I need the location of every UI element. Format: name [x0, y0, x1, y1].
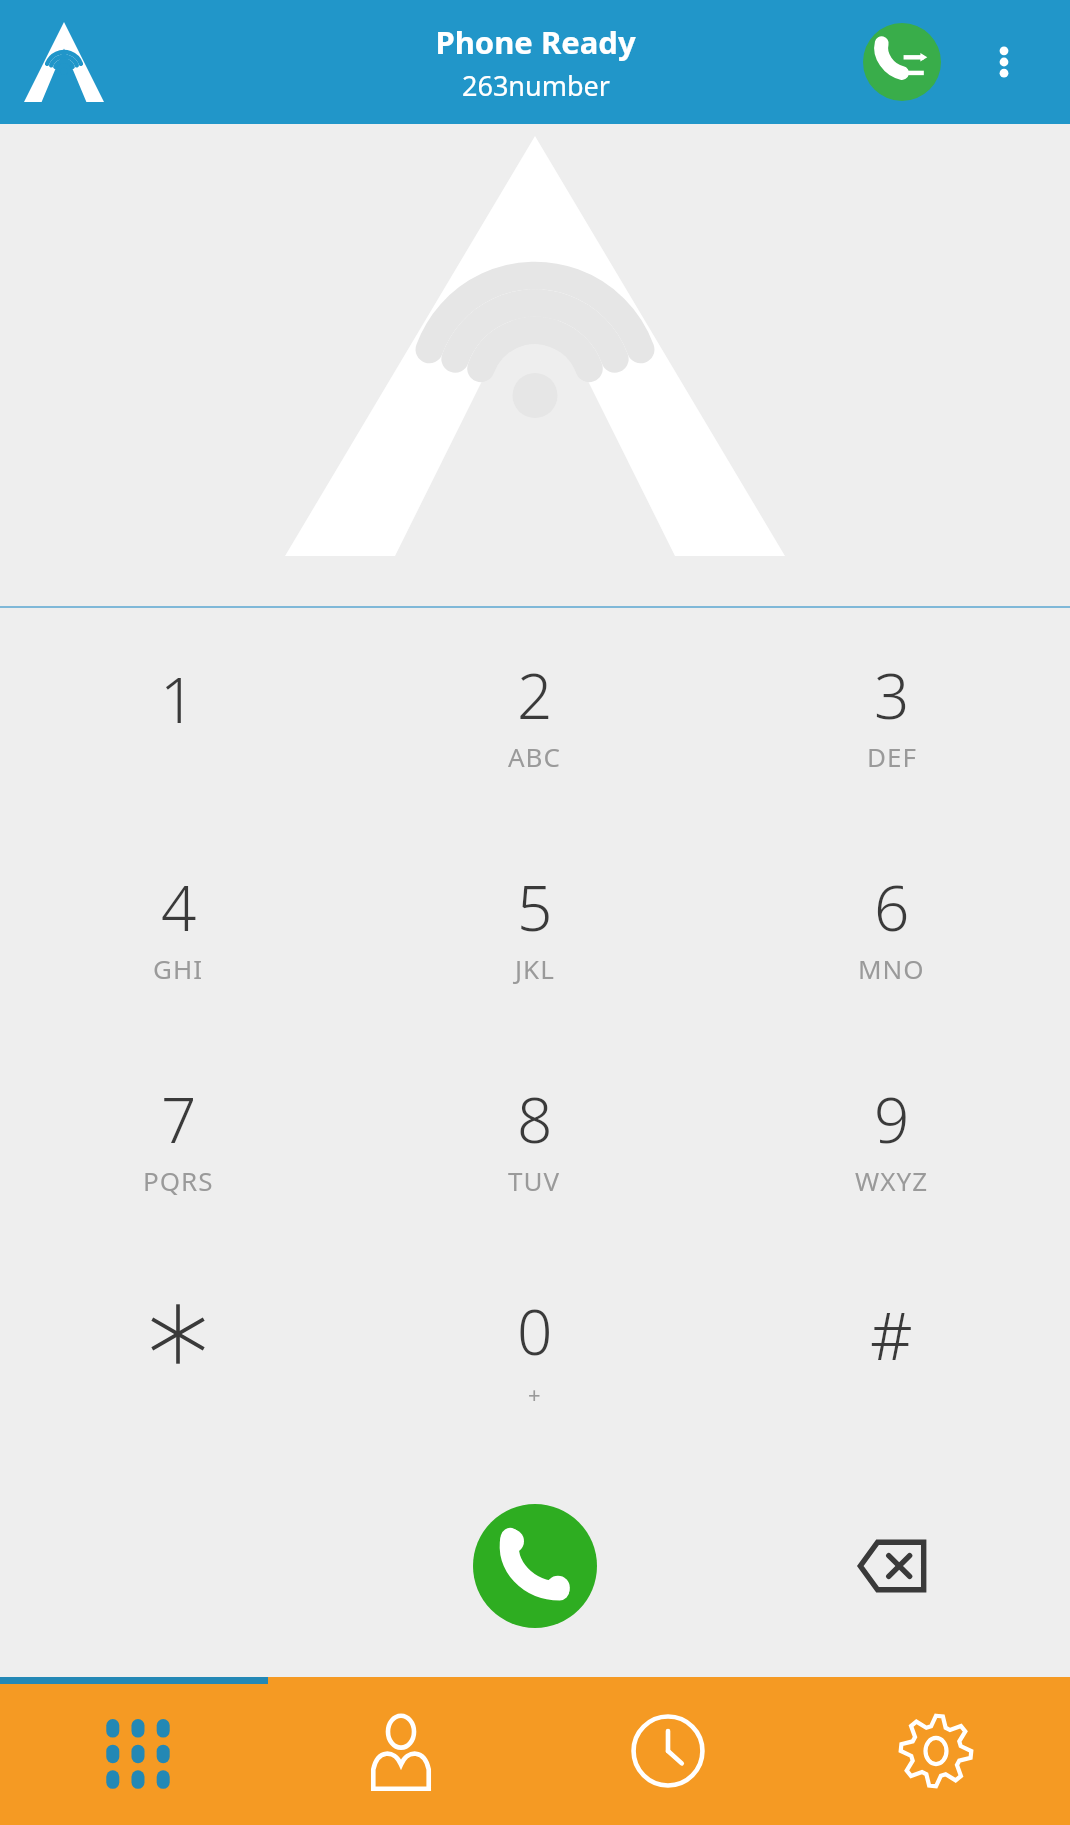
button[interactable]: 8 [356, 1031, 713, 1243]
button[interactable]: Call [356, 1455, 713, 1677]
staticText: 9 [874, 1077, 910, 1161]
staticText: 3 [874, 653, 910, 737]
button[interactable]: Recents [534, 1677, 802, 1825]
button[interactable]: 0 [356, 1243, 713, 1455]
button[interactable]: # [713, 1243, 1070, 1455]
button[interactable] [0, 1243, 356, 1455]
button[interactable]: 6 [713, 819, 1070, 1031]
button[interactable]: Call transfer [860, 20, 944, 104]
button[interactable]: 5 [356, 819, 713, 1031]
button[interactable]: 7 [0, 1031, 356, 1243]
staticText: 2 [517, 653, 553, 737]
button[interactable]: 9 [713, 1031, 1070, 1243]
staticText: 5 [517, 865, 553, 949]
staticText: 1 [160, 657, 196, 741]
staticText: DEF [867, 739, 917, 774]
staticText: MNO [858, 951, 925, 986]
staticText: # [870, 1289, 913, 1379]
staticText: + [528, 1379, 542, 1409]
staticText: PQRS [143, 1163, 214, 1198]
staticText: TUV [508, 1163, 561, 1198]
staticText: 4 [161, 865, 197, 949]
button[interactable]: Settings [802, 1677, 1070, 1825]
staticText: GHI [153, 951, 204, 986]
button[interactable]: 4 [0, 819, 356, 1031]
staticText: JKL [515, 951, 555, 986]
button[interactable]: 3 [713, 608, 1070, 819]
staticText: WXYZ [855, 1163, 929, 1198]
button[interactable]: 1 [0, 608, 356, 819]
button[interactable]: Logo [18, 16, 110, 108]
staticText: 0 [517, 1289, 553, 1373]
staticText: 8 [517, 1077, 553, 1161]
button[interactable]: Contacts [267, 1677, 534, 1825]
button[interactable]: More options [966, 24, 1042, 100]
staticText: 263number [462, 67, 610, 104]
button[interactable]: 2 [356, 608, 713, 819]
staticText: ABC [508, 739, 561, 774]
staticText: 6 [874, 865, 910, 949]
button[interactable]: Keypad [0, 1677, 267, 1825]
staticText: 7 [161, 1077, 197, 1161]
staticText: Phone Ready [435, 21, 636, 63]
button[interactable]: Backspace [713, 1455, 1070, 1677]
